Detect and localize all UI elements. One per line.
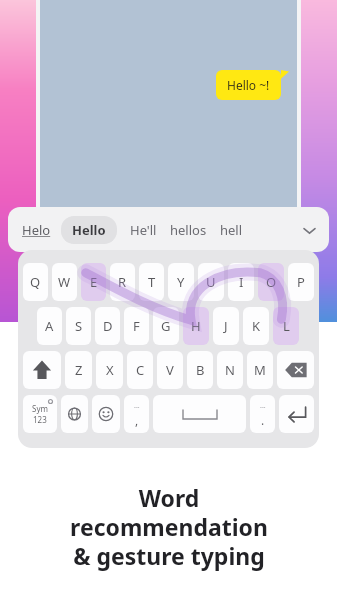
staticText: Helo xyxy=(22,221,51,239)
button[interactable]: Hello ~! xyxy=(216,70,281,100)
staticText: S xyxy=(75,317,83,335)
staticText: Sym xyxy=(32,403,48,414)
staticText: E xyxy=(90,273,98,291)
button[interactable]: Shift xyxy=(23,351,61,389)
staticText: K xyxy=(252,317,261,335)
staticText: ... xyxy=(134,401,140,411)
staticText: Word recommendation & gesture typing xyxy=(70,482,268,572)
button[interactable]: Q xyxy=(23,263,48,301)
staticText: . xyxy=(261,412,265,428)
button[interactable]: R xyxy=(110,263,135,301)
staticText: Hello xyxy=(72,221,106,239)
button[interactable]: Symbols xyxy=(23,395,57,433)
staticText: ... xyxy=(260,401,266,411)
button[interactable]: hell xyxy=(220,221,243,239)
button[interactable]: W xyxy=(52,263,77,301)
button[interactable]: U xyxy=(198,263,224,301)
staticText: Y xyxy=(177,273,185,291)
staticText: I xyxy=(239,273,244,291)
button[interactable]: V xyxy=(157,351,183,389)
button[interactable]: Emoji xyxy=(92,395,120,433)
button[interactable]: Backspace xyxy=(277,351,314,389)
button[interactable]: H xyxy=(183,307,209,345)
staticText: V xyxy=(166,361,174,379)
button[interactable]: F xyxy=(124,307,149,345)
staticText: He'll xyxy=(130,221,157,239)
staticText: C xyxy=(136,361,145,379)
button[interactable]: L xyxy=(273,307,299,345)
button[interactable]: Z xyxy=(65,351,92,389)
staticText: M xyxy=(254,361,266,379)
button[interactable]: J xyxy=(213,307,239,345)
staticText: L xyxy=(283,317,290,335)
staticText: F xyxy=(133,317,140,335)
button[interactable]: D xyxy=(95,307,120,345)
staticText: Q xyxy=(30,273,41,291)
staticText: N xyxy=(225,361,235,379)
staticText: B xyxy=(196,361,205,379)
staticText: G xyxy=(161,317,171,335)
staticText: D xyxy=(103,317,113,335)
staticText: Hello ~! xyxy=(227,77,270,93)
button[interactable]: G xyxy=(153,307,179,345)
button[interactable]: He'll xyxy=(130,221,157,239)
button[interactable]: B xyxy=(187,351,213,389)
button[interactable]: T xyxy=(139,263,164,301)
button[interactable]: M xyxy=(247,351,273,389)
button[interactable]: ... xyxy=(250,395,275,433)
button[interactable]: K xyxy=(243,307,269,345)
button[interactable]: Hello xyxy=(61,216,117,244)
button[interactable]: Enter xyxy=(279,395,314,433)
staticText: W xyxy=(58,273,71,291)
staticText: H xyxy=(191,317,201,335)
button[interactable]: Change language xyxy=(61,395,88,433)
staticText: U xyxy=(206,273,216,291)
staticText: J xyxy=(224,317,228,335)
button[interactable]: O xyxy=(258,263,284,301)
button[interactable]: N xyxy=(217,351,243,389)
staticText: hell xyxy=(220,221,243,239)
button[interactable]: P xyxy=(288,263,314,301)
button[interactable]: Space xyxy=(153,395,246,433)
staticText: , xyxy=(135,412,139,428)
button[interactable]: X xyxy=(96,351,123,389)
button[interactable]: Helo xyxy=(22,221,51,239)
staticText: R xyxy=(118,273,127,291)
staticText: Z xyxy=(75,361,83,379)
button[interactable]: Y xyxy=(168,263,194,301)
staticText: X xyxy=(106,361,114,379)
button[interactable]: A xyxy=(37,307,62,345)
staticText: P xyxy=(297,273,305,291)
staticText: hellos xyxy=(170,221,207,239)
button[interactable]: hellos xyxy=(170,221,207,239)
button[interactable]: Expand suggestions xyxy=(297,218,321,242)
staticText: O xyxy=(266,273,277,291)
staticText: T xyxy=(148,273,156,291)
staticText: A xyxy=(45,317,54,335)
button[interactable]: S xyxy=(66,307,91,345)
button[interactable]: E xyxy=(81,263,106,301)
button[interactable]: ... xyxy=(124,395,149,433)
button[interactable]: I xyxy=(228,263,254,301)
staticText: 123 xyxy=(33,414,47,425)
button[interactable]: C xyxy=(127,351,153,389)
